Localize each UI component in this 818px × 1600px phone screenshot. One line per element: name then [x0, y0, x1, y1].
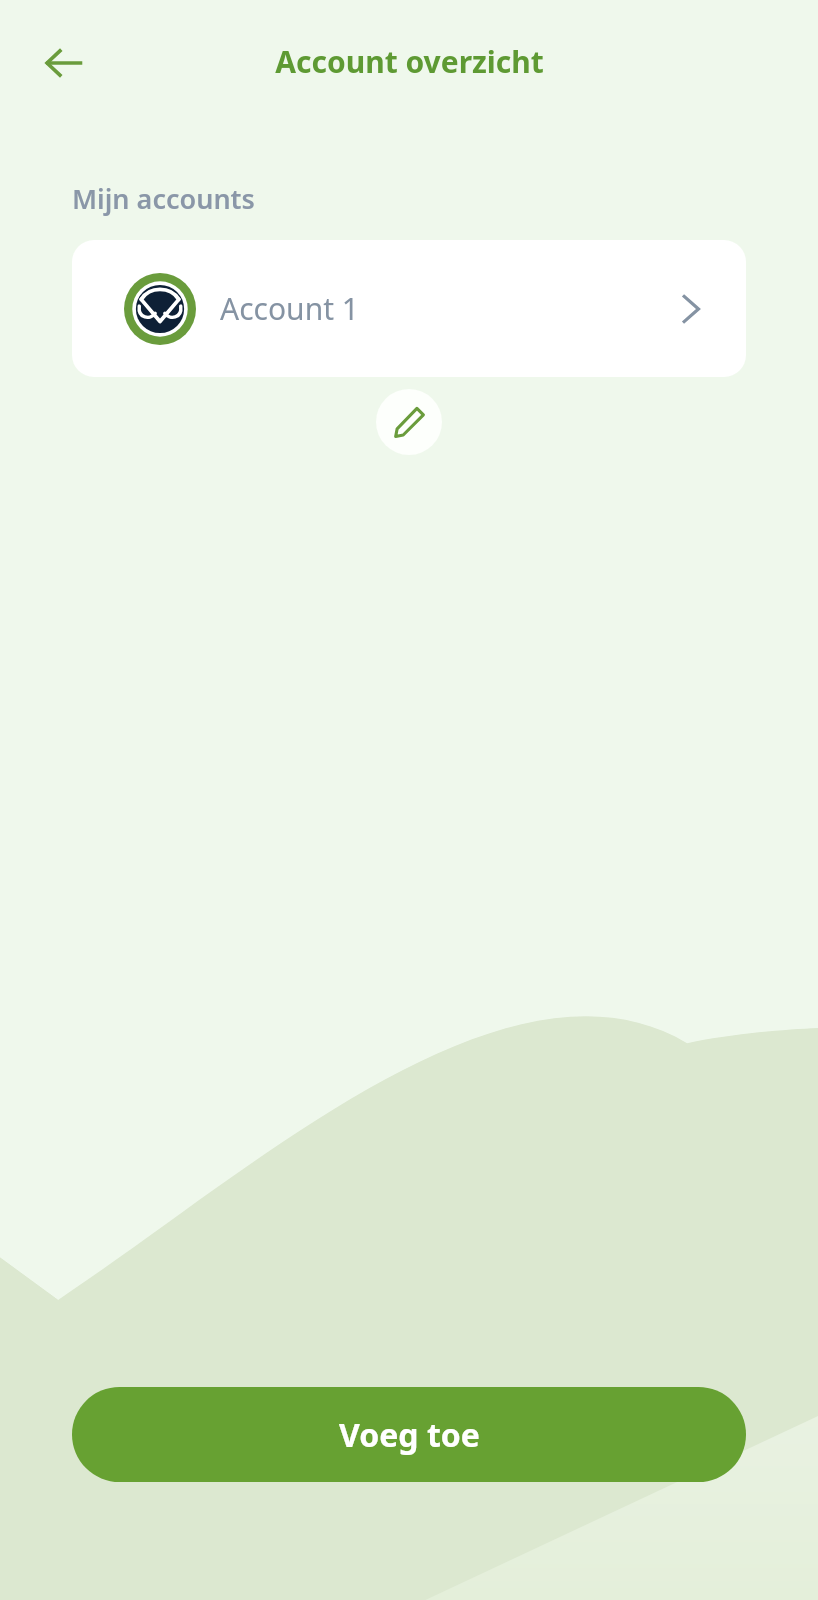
- button[interactable]: Edit: [376, 389, 442, 455]
- staticText: Account 1: [220, 288, 359, 329]
- button[interactable]: Back: [28, 28, 98, 98]
- staticText: Mijn accounts: [72, 180, 255, 217]
- staticText: Voeg toe: [339, 1413, 480, 1457]
- button[interactable]: Voeg toe: [72, 1387, 746, 1482]
- staticText: Account overzicht: [275, 41, 544, 82]
- button[interactable]: Account 1: [72, 240, 746, 377]
